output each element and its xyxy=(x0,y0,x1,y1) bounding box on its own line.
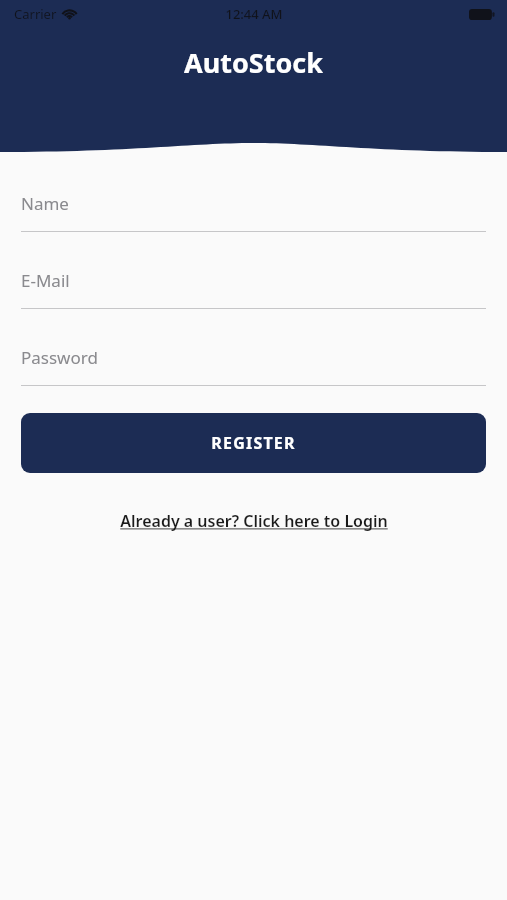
staticText: REGISTER xyxy=(211,432,296,454)
staticText: Already a user? Click here to Login xyxy=(120,510,388,532)
button[interactable]: Name xyxy=(0,192,507,232)
button[interactable]: Already a user? Click here to Login xyxy=(114,507,394,535)
button[interactable]: REGISTER xyxy=(21,413,486,473)
staticText: E-Mail xyxy=(21,269,70,292)
staticText: 12:44 AM xyxy=(225,5,283,23)
button[interactable]: Password xyxy=(0,346,507,386)
staticText: Carrier xyxy=(14,5,57,23)
staticText: Name xyxy=(21,192,69,215)
staticText: Password xyxy=(21,346,98,369)
staticText: AutoStock xyxy=(184,44,323,81)
button[interactable]: E-Mail xyxy=(0,269,507,309)
